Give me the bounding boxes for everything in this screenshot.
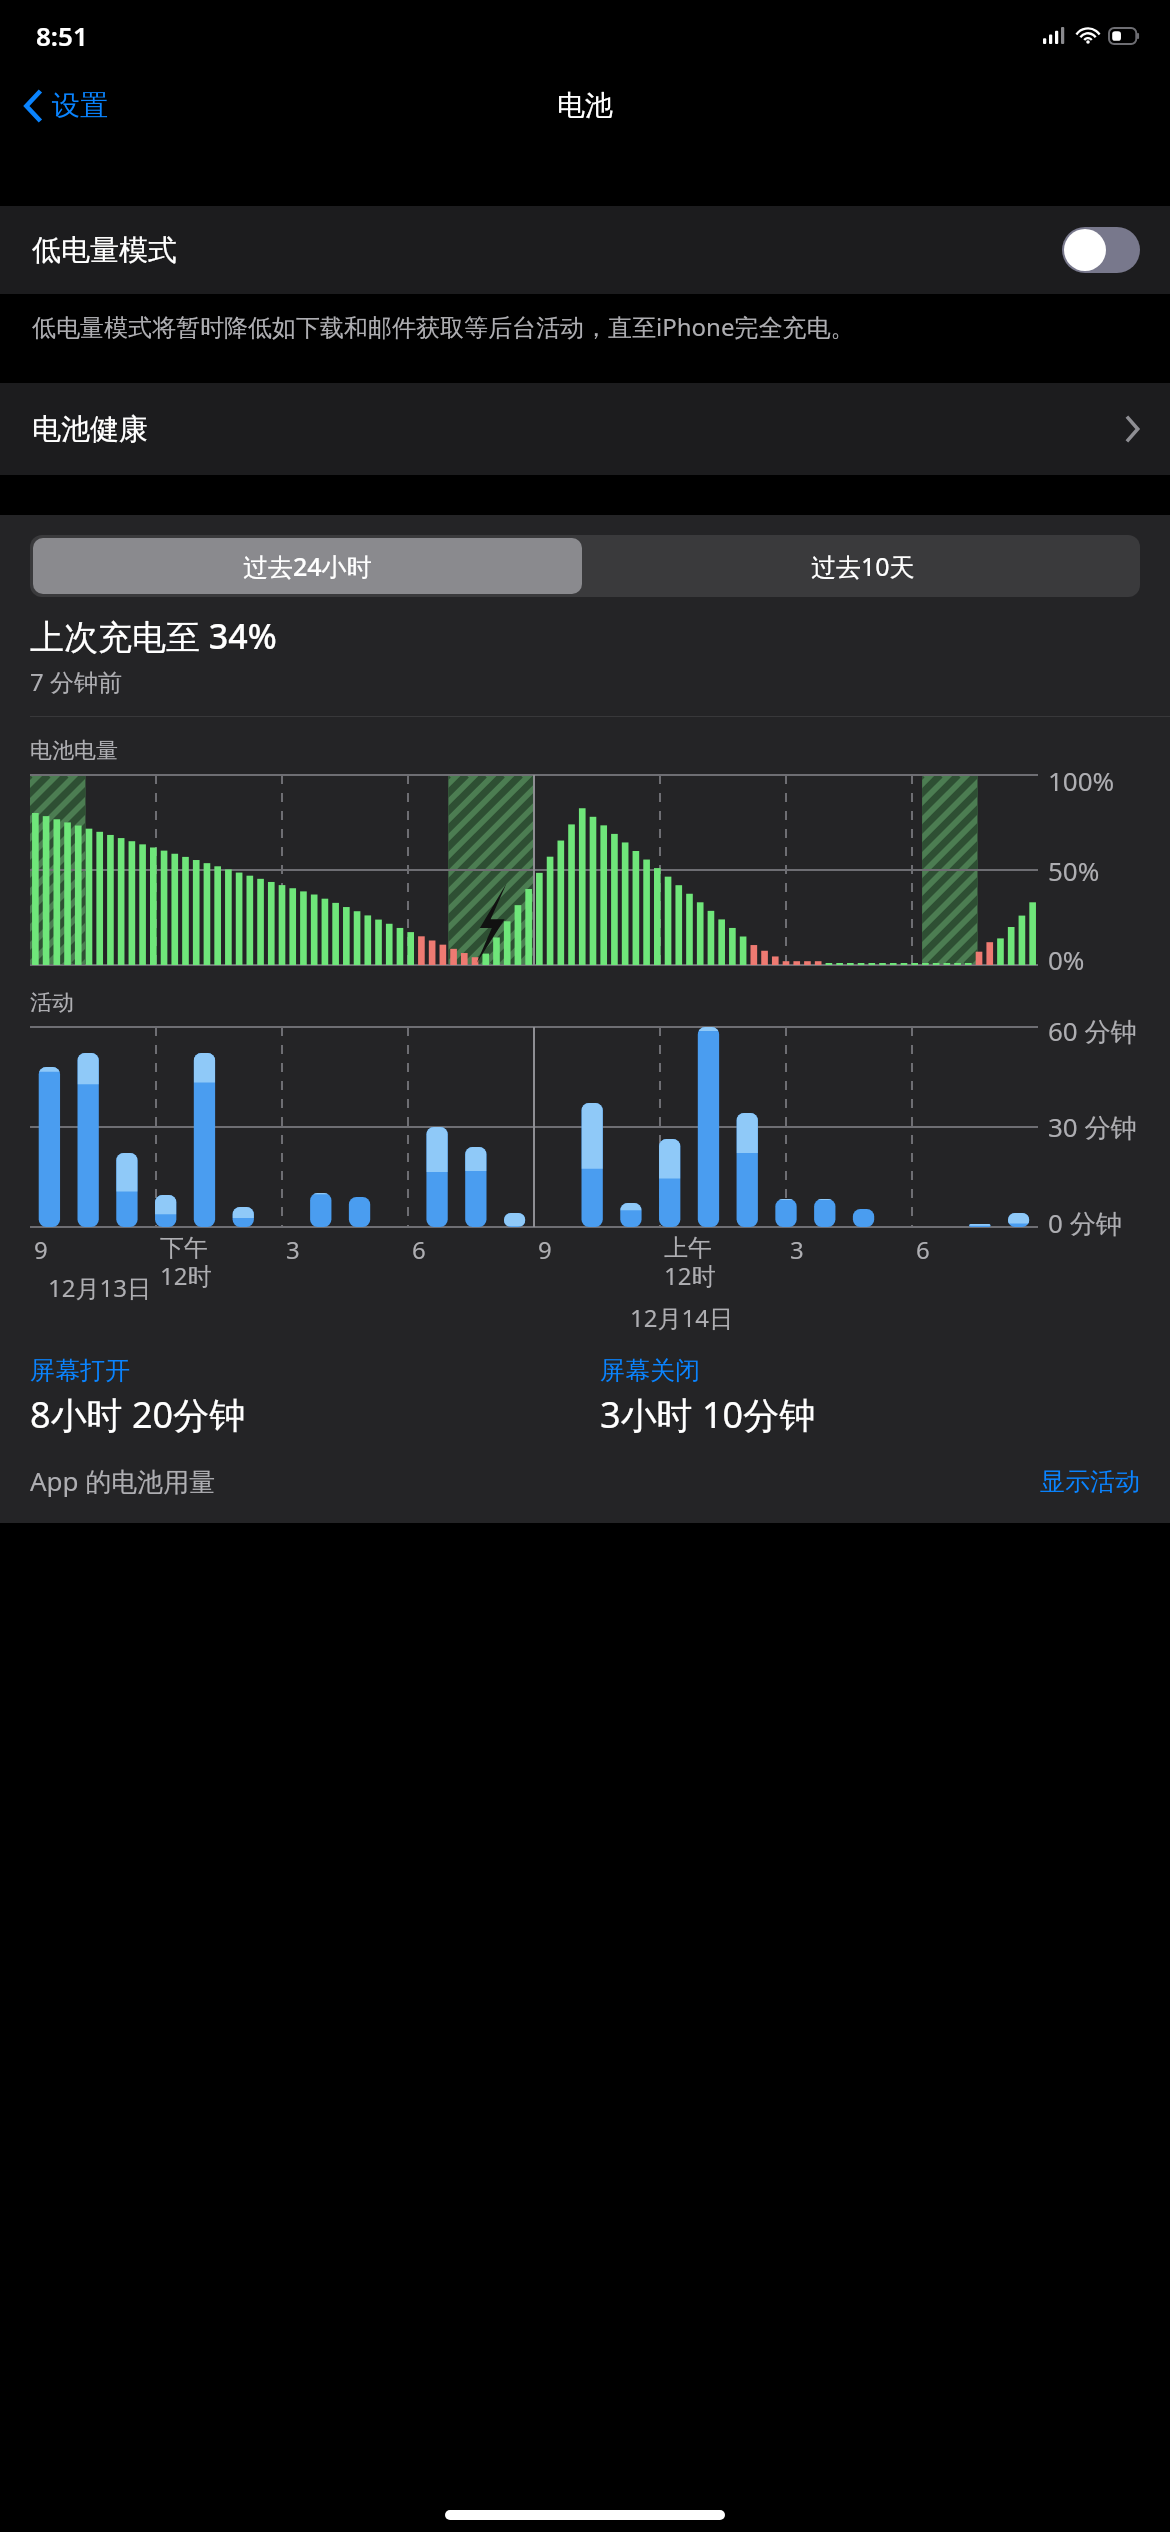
button[interactable]: 低电量模式开关: [1062, 227, 1140, 273]
staticText: 下午 12时: [160, 1233, 212, 1292]
staticText: 9: [34, 1233, 48, 1266]
staticText: 设置: [52, 88, 108, 123]
staticText: 屏幕打开: [30, 1355, 130, 1386]
staticText: 低电量模式将暂时降低如下载和邮件获取等后台活动，直至iPhone完全充电。: [32, 310, 855, 343]
staticText: 8小时 20分钟: [30, 1390, 246, 1439]
staticText: 50%: [1048, 853, 1100, 888]
staticText: 12月14日: [630, 1301, 733, 1334]
staticText: 6: [916, 1233, 930, 1266]
staticText: 0%: [1048, 942, 1085, 977]
staticText: 60 分钟: [1048, 1013, 1137, 1049]
staticText: 9: [538, 1233, 552, 1266]
staticText: 活动: [30, 989, 74, 1017]
staticText: 上午 12时: [664, 1233, 716, 1292]
staticText: 3小时 10分钟: [600, 1390, 816, 1439]
staticText: 0 分钟: [1048, 1205, 1122, 1241]
staticText: 6: [412, 1233, 426, 1266]
staticText: 3: [790, 1233, 804, 1266]
staticText: App 的电池用量: [30, 1463, 216, 1499]
button[interactable]: 设置: [16, 80, 116, 131]
staticText: 12月13日: [48, 1271, 151, 1304]
staticText: 屏幕关闭: [600, 1355, 700, 1386]
button[interactable]: 过去10天: [585, 535, 1140, 597]
staticText: 电池: [557, 88, 613, 123]
staticText: 电池电量: [30, 737, 118, 765]
staticText: 3: [286, 1233, 300, 1266]
button[interactable]: 低电量模式: [0, 206, 1170, 294]
staticText: 100%: [1048, 763, 1115, 798]
staticText: 显示活动: [1040, 1466, 1140, 1497]
button[interactable]: 过去24小时: [33, 538, 582, 594]
staticText: 过去24小时: [243, 549, 372, 583]
staticText: 电池健康: [32, 411, 148, 448]
staticText: 7 分钟前: [30, 665, 122, 698]
staticText: 上次充电至 34%: [30, 613, 277, 659]
button[interactable]: 显示活动: [1040, 1466, 1170, 1497]
staticText: 30 分钟: [1048, 1109, 1137, 1145]
button[interactable]: 电池健康: [0, 383, 1170, 475]
staticText: 低电量模式: [32, 232, 177, 269]
staticText: 过去10天: [811, 549, 915, 583]
staticText: 8:51: [36, 18, 88, 53]
